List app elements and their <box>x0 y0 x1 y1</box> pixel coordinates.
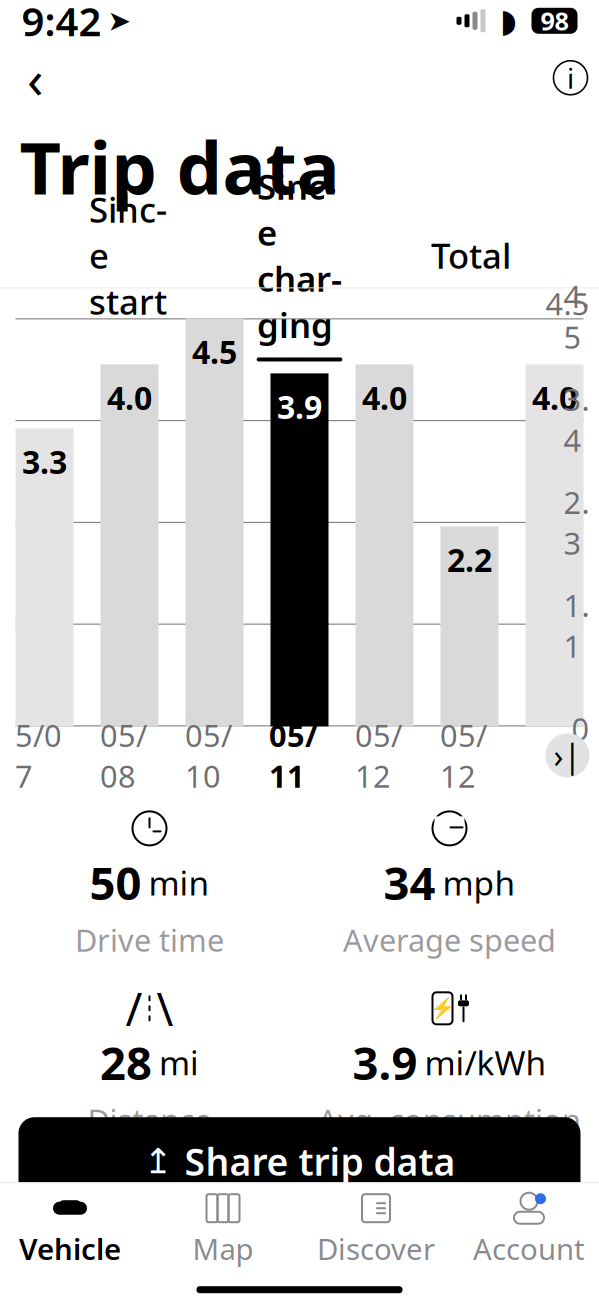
staticText: Since charging <box>257 163 342 347</box>
staticText: i <box>567 59 574 96</box>
staticText: 05/08 <box>100 715 147 796</box>
staticText: 9:42 <box>21 0 101 47</box>
button[interactable]: Total <box>428 236 514 288</box>
button[interactable]: Since start <box>85 236 171 288</box>
staticText: 3.9 <box>352 1032 417 1092</box>
staticText: Avg. consumption <box>318 1099 581 1140</box>
staticText: 4.0 <box>532 376 577 419</box>
staticText: mi <box>159 1040 199 1085</box>
staticText: 05/11 <box>269 715 318 796</box>
staticText: Discover <box>317 1229 435 1268</box>
staticText: 3.3 <box>22 440 67 483</box>
button[interactable]: Since charging <box>257 236 342 288</box>
staticText: 4.0 <box>107 376 152 419</box>
staticText: 1.1 <box>563 585 589 666</box>
staticText: Vehicle <box>19 1229 121 1268</box>
staticText: Share trip data <box>184 1136 455 1186</box>
staticText: min <box>148 860 209 905</box>
staticText: 2.3 <box>563 482 589 563</box>
staticText: Trip data <box>19 119 339 214</box>
staticText: 3.4 <box>563 379 589 460</box>
staticText: ⚡ <box>430 997 455 1020</box>
staticText: 3.9 <box>277 385 322 428</box>
staticText: 28 <box>100 1032 152 1092</box>
staticText: \ <box>156 978 173 1038</box>
staticText: 34 <box>383 852 435 913</box>
staticText: 05/10 <box>185 715 232 796</box>
staticText: Map <box>192 1229 253 1268</box>
staticText: 4.0 <box>362 376 407 419</box>
staticText: 4.5 <box>192 330 237 373</box>
staticText: 2.2 <box>447 538 492 581</box>
staticText: / <box>125 978 142 1038</box>
button[interactable]: Info <box>553 61 587 95</box>
staticText: 05/12 <box>440 715 487 796</box>
button[interactable]: Map <box>146 1183 299 1274</box>
staticText: ➤ <box>107 5 130 37</box>
staticText: ‹ <box>27 42 44 113</box>
button[interactable]: Jump to latest <box>545 733 589 777</box>
staticText: Distance <box>87 1099 211 1140</box>
staticText: ◗ <box>500 3 517 39</box>
button[interactable]: Discover <box>299 1183 452 1274</box>
staticText: Total <box>431 232 511 278</box>
staticText: 50 <box>89 852 141 913</box>
staticText: mph <box>442 860 515 905</box>
staticText: Since start <box>89 186 167 324</box>
button[interactable]: Account <box>452 1183 599 1274</box>
staticText: 4.5 <box>545 283 589 324</box>
button[interactable]: ↥ <box>18 1117 580 1205</box>
staticText: Account <box>473 1229 585 1268</box>
button[interactable]: Vehicle <box>0 1183 146 1274</box>
staticText: 0 <box>571 708 589 749</box>
staticText: Drive time <box>75 920 224 960</box>
button[interactable]: Back <box>11 54 59 102</box>
staticText: ›| <box>553 734 581 777</box>
staticText: ↥ <box>143 1142 172 1181</box>
staticText: 05/12 <box>355 715 402 796</box>
staticText: 98 <box>540 4 568 37</box>
staticText: 4.5 <box>563 276 589 357</box>
staticText: Average speed <box>343 920 556 960</box>
staticText: 5/07 <box>15 715 62 796</box>
staticText: mi/kWh <box>424 1040 546 1085</box>
